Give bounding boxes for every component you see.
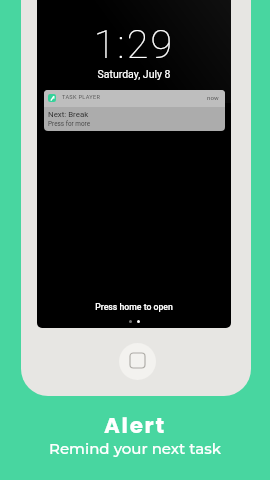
button[interactable]: TASK PLAYER [44, 90, 225, 131]
staticText: Press home to open [37, 302, 231, 312]
staticText: now [207, 94, 219, 101]
staticText: Press for more [48, 120, 91, 128]
staticText: Alert [0, 410, 270, 440]
staticText: TASK PLAYER [62, 94, 101, 101]
staticText: Remind your next task [0, 439, 270, 457]
staticText: Next: Break [48, 110, 89, 119]
button[interactable]: Home [119, 343, 156, 380]
staticText: 1:29 [37, 21, 231, 67]
staticText: Saturday, July 8 [37, 68, 231, 80]
